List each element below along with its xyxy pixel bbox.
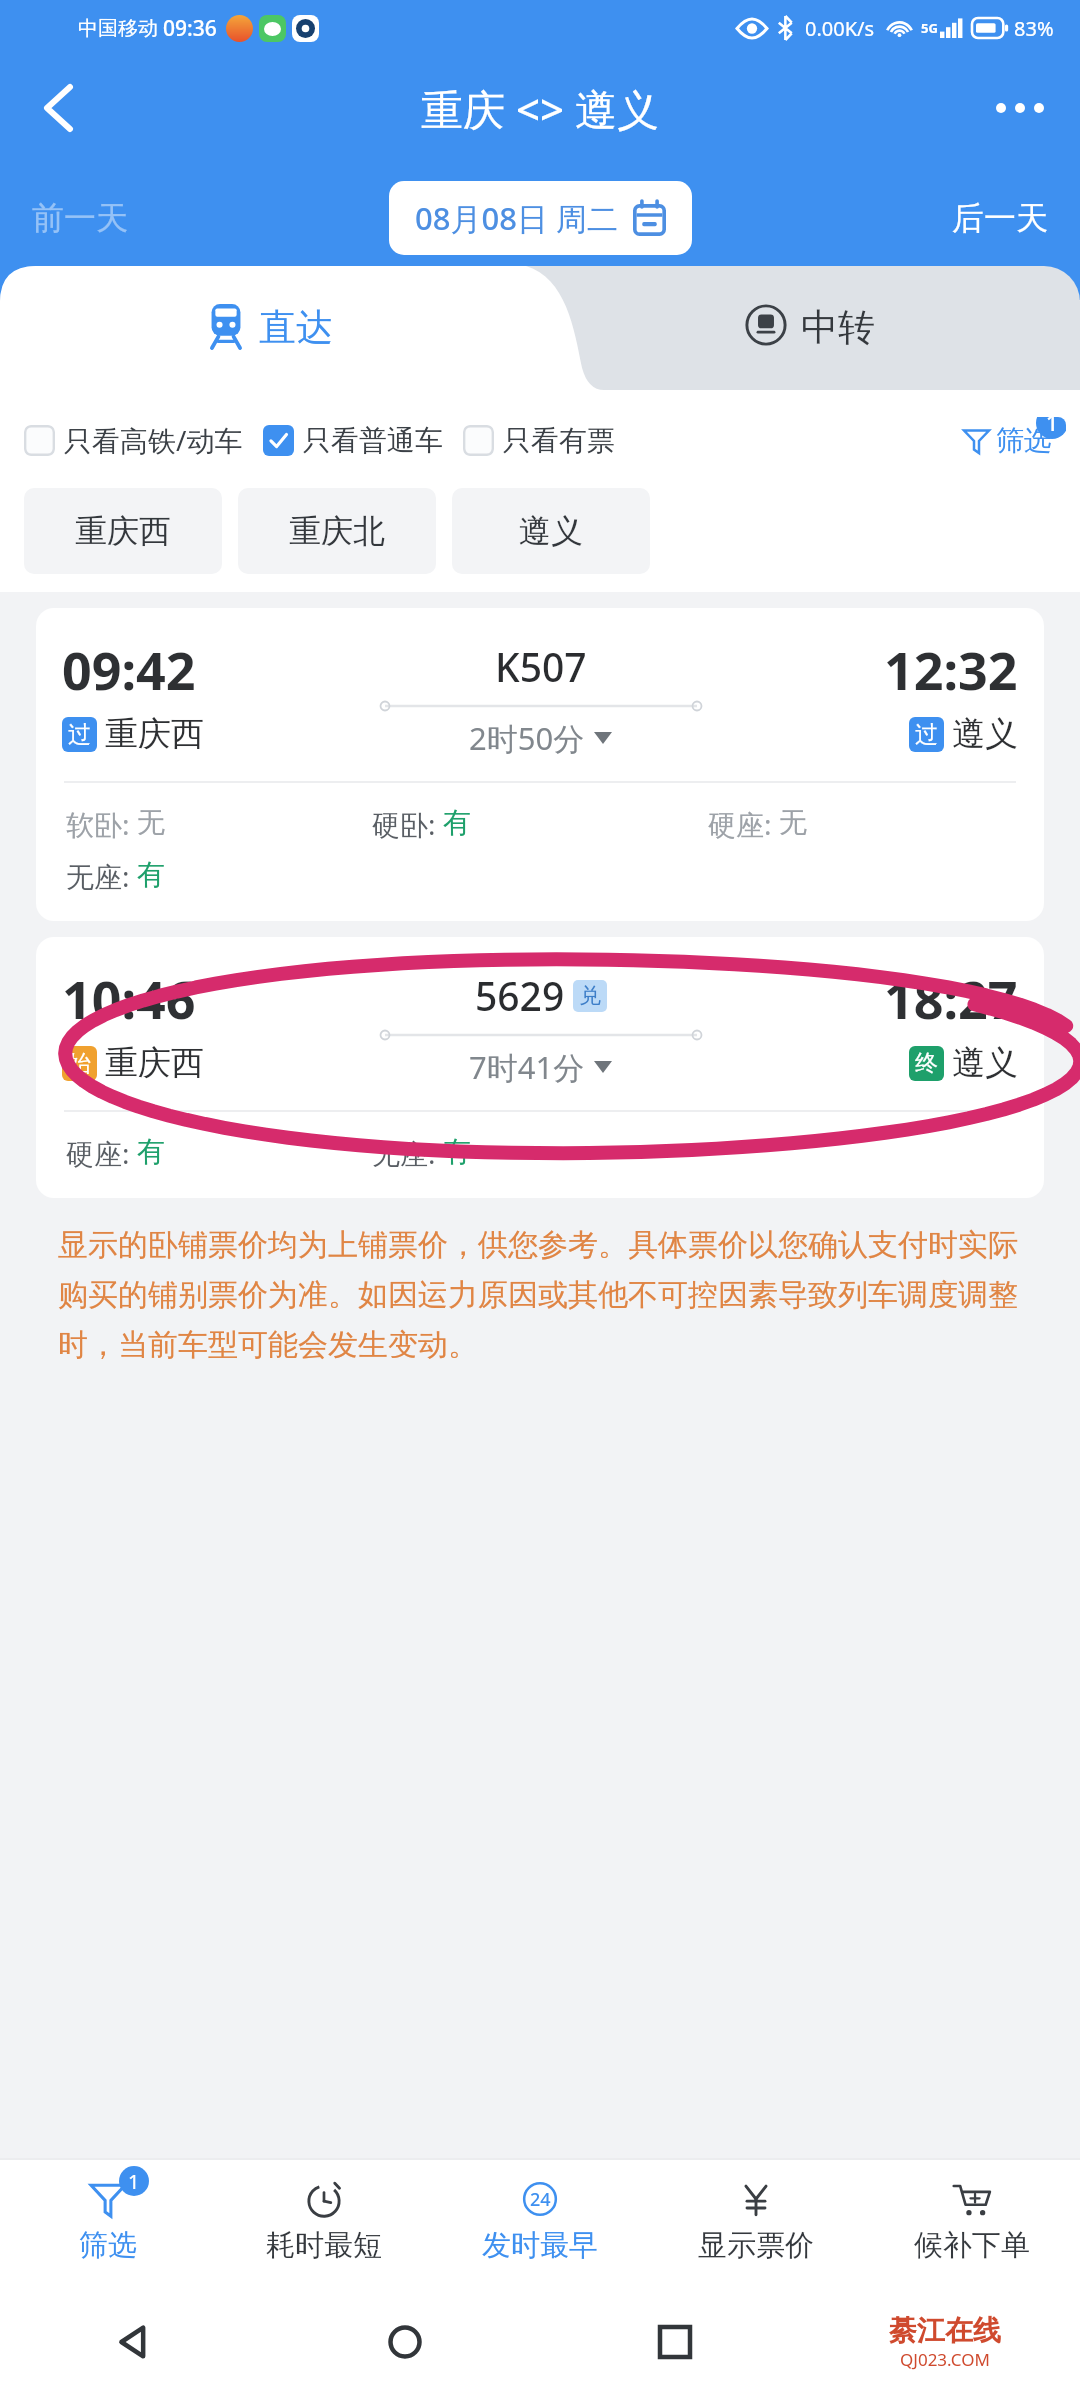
staticText: 重庆西: [105, 1042, 204, 1084]
staticText: 5629: [475, 969, 565, 1022]
staticText: 有: [137, 857, 165, 892]
button[interactable]: 中转: [540, 266, 1080, 390]
button[interactable]: 候补下单: [864, 2160, 1080, 2284]
button[interactable]: 筛选: [958, 417, 1066, 464]
staticText: 候补下单: [914, 2227, 1030, 2264]
staticText: 遵义: [952, 1042, 1018, 1084]
staticText: 终: [915, 1049, 938, 1078]
staticText: 后一天: [952, 198, 1048, 238]
staticText: 有: [137, 1134, 165, 1169]
staticText: 前一天: [32, 198, 128, 238]
staticText: K507: [495, 640, 587, 693]
button[interactable]: Back: [0, 2284, 270, 2400]
staticText: 09:36: [163, 14, 217, 43]
staticText: 08月08日 周二: [415, 197, 618, 239]
button[interactable]: 重庆北: [238, 488, 436, 574]
button[interactable]: 24: [432, 2160, 648, 2284]
staticText: 重庆西: [75, 511, 171, 551]
staticText: 0.00K/s: [805, 15, 875, 42]
button[interactable]: 显示票价: [648, 2160, 864, 2284]
staticText: 18:27: [884, 963, 1018, 1034]
button[interactable]: 后一天: [938, 186, 1062, 250]
staticText: 中转: [801, 304, 875, 351]
button[interactable]: 只看普通车: [263, 416, 443, 465]
staticText: 重庆 <> 遵义: [421, 80, 659, 137]
staticText: 兑: [579, 982, 601, 1010]
staticText: QJ023.COM: [900, 2348, 990, 2371]
staticText: 硬座:: [66, 1134, 137, 1172]
button[interactable]: Recent apps: [540, 2284, 810, 2400]
staticText: 1: [128, 2168, 140, 2195]
staticText: 遵义: [519, 511, 583, 551]
staticText: 只看有票: [503, 423, 615, 458]
button[interactable]: 10:46: [36, 937, 1044, 1198]
staticText: 无: [779, 805, 807, 840]
staticText: 只看普通车: [303, 423, 443, 458]
button[interactable]: 只看高铁/动车: [24, 414, 243, 466]
staticText: 只看高铁/动车: [64, 421, 243, 459]
staticText: 无座:: [372, 1134, 443, 1172]
staticText: 7时41分: [469, 1046, 585, 1088]
button[interactable]: 重庆西: [24, 488, 222, 574]
button[interactable]: Back: [20, 70, 96, 146]
staticText: 83%: [1014, 15, 1054, 42]
button[interactable]: Home: [270, 2284, 540, 2400]
staticText: 5G: [921, 19, 938, 37]
staticText: 有: [443, 805, 471, 840]
staticText: 无座:: [66, 857, 137, 895]
staticText: 过: [68, 720, 91, 749]
button[interactable]: 遵义: [452, 488, 650, 574]
staticText: 筛选: [79, 2227, 137, 2264]
staticText: 显示票价: [698, 2227, 814, 2264]
staticText: 1: [1046, 417, 1059, 438]
staticText: 无: [137, 805, 165, 840]
staticText: 发时最早: [482, 2227, 598, 2264]
staticText: 10:46: [62, 963, 196, 1034]
staticText: 中国移动: [78, 16, 158, 41]
staticText: 有: [443, 1134, 471, 1169]
staticText: 硬座:: [708, 805, 779, 843]
staticText: 遵义: [952, 713, 1018, 755]
button[interactable]: 耗时最短: [216, 2160, 432, 2284]
staticText: 耗时最短: [266, 2227, 382, 2264]
staticText: 直达: [259, 304, 333, 351]
staticText: 2时50分: [469, 717, 585, 759]
staticText: 重庆北: [289, 511, 385, 551]
staticText: 綦江在线: [889, 2313, 1001, 2348]
staticText: 重庆西: [105, 713, 204, 755]
button[interactable]: 只看有票: [463, 416, 615, 465]
button[interactable]: 直达: [0, 266, 540, 390]
staticText: 过: [915, 720, 938, 749]
staticText: 软卧:: [66, 805, 137, 843]
staticText: 显示的卧铺票价均为上铺票价，供您参考。具体票价以您确认支付时实际购买的铺别票价为…: [58, 1226, 1022, 1364]
button[interactable]: 09:42: [36, 608, 1044, 921]
staticText: 24: [530, 2187, 551, 2212]
staticText: 始: [68, 1049, 91, 1078]
button[interactable]: 前一天: [18, 186, 142, 250]
button[interactable]: 1: [0, 2160, 216, 2284]
button[interactable]: More options: [982, 70, 1058, 146]
staticText: 硬卧:: [372, 805, 443, 843]
staticText: 09:42: [62, 634, 196, 705]
staticText: 筛选: [996, 423, 1052, 458]
staticText: 12:32: [884, 634, 1018, 705]
button[interactable]: 08月08日 周二: [389, 181, 692, 255]
